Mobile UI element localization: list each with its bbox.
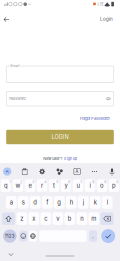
staticText: x (32, 215, 35, 222)
button[interactable]: Forgot Password? (79, 115, 111, 123)
button[interactable]: w (13, 179, 23, 192)
button[interactable]: g (54, 196, 64, 209)
button[interactable]: LOGIN (6, 130, 114, 144)
staticText: 0 (116, 180, 118, 184)
button[interactable]: More options (89, 167, 100, 176)
button[interactable]: . (89, 230, 97, 242)
staticText: z (20, 215, 23, 222)
staticText: p (112, 182, 116, 189)
button[interactable]: Hide keyboard (1, 248, 21, 261)
button[interactable]: m (88, 212, 99, 225)
button[interactable]: q (1, 179, 11, 192)
staticText: j (83, 199, 84, 206)
staticText: s (22, 199, 25, 206)
button[interactable]: y (61, 179, 71, 192)
button[interactable]: Voice input (106, 167, 118, 176)
staticText: v (56, 215, 59, 222)
button[interactable]: j (78, 196, 88, 209)
button[interactable]: Translate (71, 167, 83, 176)
button[interactable]: Settings (36, 167, 48, 176)
button[interactable]: b (64, 212, 75, 225)
button[interactable]: i (85, 179, 95, 192)
staticText: n (80, 215, 83, 222)
staticText: Password (9, 96, 25, 101)
button[interactable]: u (73, 179, 83, 192)
button[interactable]: z (16, 212, 27, 225)
button[interactable]: s (18, 196, 28, 209)
staticText: 5 (56, 180, 58, 184)
staticText: New user? (43, 156, 62, 161)
button[interactable]: k (90, 196, 100, 209)
button[interactable]: f (42, 196, 52, 209)
staticText: f (46, 199, 48, 206)
staticText: Email (10, 64, 19, 68)
staticText: r (41, 182, 43, 189)
staticText: A (76, 169, 79, 174)
button[interactable]: ?123 (3, 229, 17, 243)
button[interactable]: p (109, 179, 119, 192)
staticText: g (57, 199, 61, 206)
staticText: a (10, 199, 13, 206)
staticText: b (68, 215, 72, 222)
button[interactable]: Sign up (64, 156, 77, 161)
staticText: . (92, 233, 94, 240)
staticText: l (107, 199, 108, 206)
staticText: 6 (68, 180, 70, 184)
button[interactable]: c (40, 212, 51, 225)
staticText: LTE (98, 2, 104, 6)
button[interactable]: o (97, 179, 107, 192)
button[interactable]: Clipboard (19, 167, 30, 176)
staticText: 2 (20, 180, 22, 184)
button[interactable]: Login (98, 14, 115, 25)
button[interactable]: Show password (104, 94, 113, 104)
button[interactable]: x (28, 212, 39, 225)
staticText: e (28, 182, 31, 189)
button[interactable]: Backspace (100, 212, 114, 225)
staticText: y (64, 182, 67, 189)
staticText: t (53, 182, 55, 189)
staticText: 3 (32, 180, 34, 184)
button[interactable]: v (52, 212, 63, 225)
staticText: u (76, 182, 79, 189)
staticText: Sign up (64, 156, 77, 161)
button[interactable]: a (6, 196, 16, 209)
button[interactable]: e (25, 179, 35, 192)
button[interactable]: d (30, 196, 40, 209)
button[interactable]: Stickers (54, 167, 65, 176)
button[interactable]: r (37, 179, 47, 192)
button[interactable]: Enter (101, 229, 115, 243)
staticText: d (33, 199, 37, 206)
staticText: q (4, 182, 8, 189)
staticText: m (91, 215, 96, 222)
button[interactable]: Shift (2, 212, 15, 225)
button[interactable]: Change language (29, 231, 37, 242)
button[interactable]: l (102, 196, 112, 209)
staticText: LOGIN (51, 134, 68, 140)
staticText: 7 (80, 180, 82, 184)
button[interactable]: n (76, 212, 87, 225)
staticText: o (100, 182, 104, 189)
staticText: c (44, 215, 47, 222)
staticText: w (15, 182, 20, 189)
button[interactable]: Back (0, 13, 13, 26)
staticText: 4 (44, 180, 46, 184)
staticText: Login (100, 16, 113, 22)
staticText: 1 (9, 180, 10, 184)
button[interactable]: Keyboard menu (1, 167, 13, 176)
staticText: h (70, 199, 73, 206)
button[interactable]: h (66, 196, 76, 209)
staticText: 8 (92, 180, 94, 184)
staticText: k (94, 199, 97, 206)
staticText: Forgot Password? (80, 116, 110, 121)
button[interactable]: t (49, 179, 59, 192)
button[interactable]: Emoji (19, 231, 27, 242)
staticText: ?123 (5, 233, 15, 239)
staticText: 9 (104, 180, 106, 184)
